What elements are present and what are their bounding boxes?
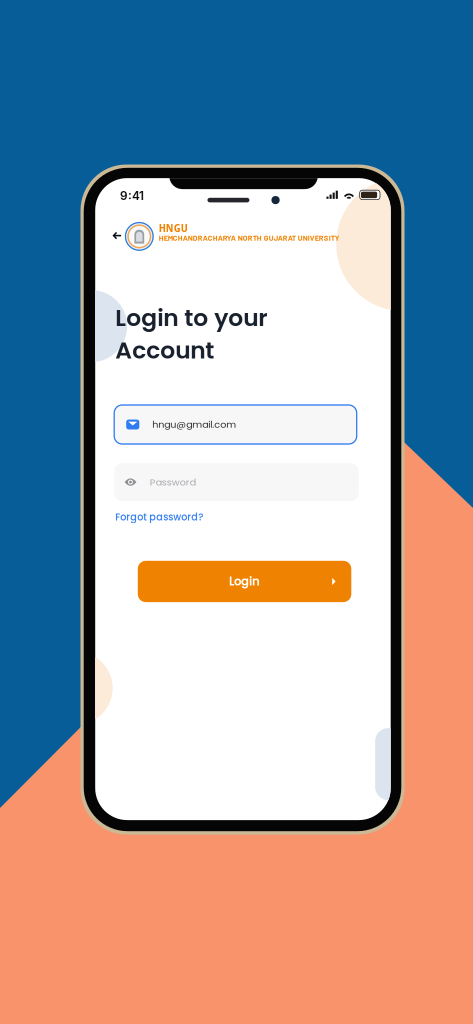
button[interactable]: Forgot password? — [115, 510, 225, 524]
staticText: Password — [150, 475, 196, 489]
staticText: Account — [115, 334, 214, 367]
staticText: HNGU — [159, 220, 188, 235]
staticText: HEMCHANDRACHARYA NORTH GUJARAT UNIVERSIT… — [159, 233, 340, 242]
staticText: Login to your — [115, 301, 267, 334]
staticText: Forgot password? — [115, 510, 203, 524]
staticText: 9:41 — [120, 189, 144, 203]
staticText: Login — [229, 573, 260, 590]
button[interactable]: Back — [105, 224, 129, 247]
staticText: hngu@gmail.com — [152, 418, 236, 431]
button[interactable]: Login — [138, 561, 351, 602]
